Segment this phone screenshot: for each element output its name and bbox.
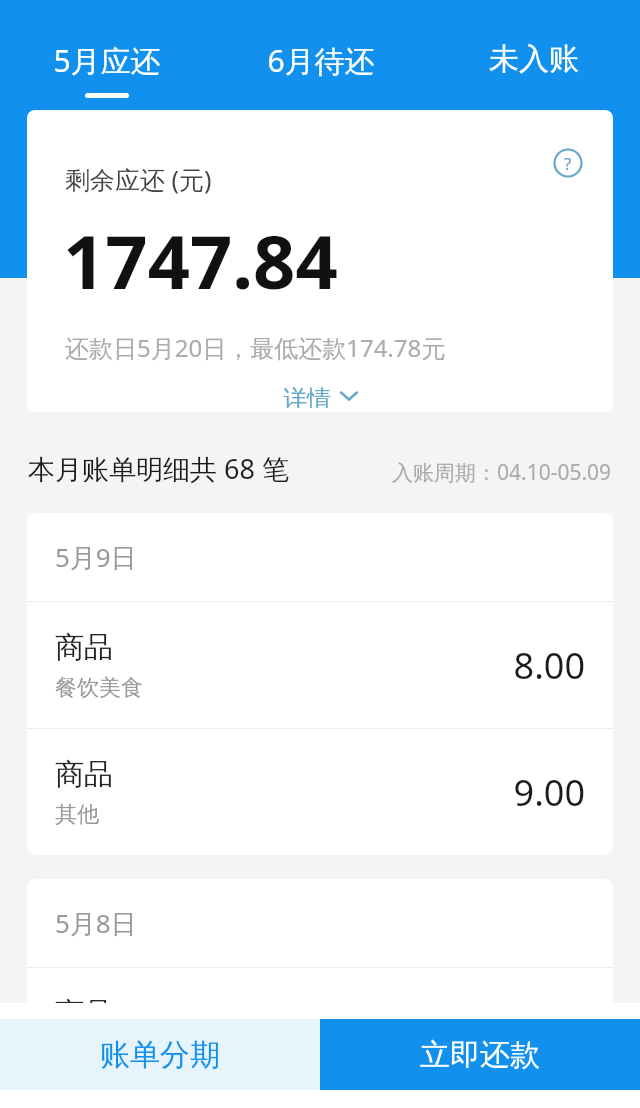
staticText: 剩余应还 (元): [65, 162, 212, 196]
staticText: 餐饮美食: [55, 674, 143, 702]
button[interactable]: 详情: [273, 380, 367, 412]
staticText: 还款日5月20日，最低还款174.78元: [65, 331, 446, 364]
button[interactable]: 商品: [27, 602, 613, 728]
staticText: 12.00: [492, 1007, 585, 1056]
button[interactable]: 6月待还: [214, 0, 427, 110]
button[interactable]: 帮助: [551, 146, 585, 180]
staticText: 其他: [55, 801, 99, 829]
staticText: 5月应还: [53, 40, 161, 81]
button[interactable]: 5月8日: [27, 879, 613, 967]
button[interactable]: 未入账: [427, 0, 640, 110]
staticText: 8.00: [513, 641, 585, 690]
staticText: 本月账单明细共 68 笔: [28, 450, 289, 487]
button[interactable]: 商品: [27, 729, 613, 855]
staticText: 5月8日: [55, 905, 137, 941]
button[interactable]: 商品: [27, 968, 613, 1094]
button[interactable]: 账单分期: [0, 1019, 320, 1090]
staticText: 商品: [55, 756, 113, 793]
staticText: 商品: [55, 629, 113, 666]
button[interactable]: 帮助: [27, 110, 613, 412]
staticText: 9.00: [513, 768, 585, 817]
staticText: 入账周期：04.10-05.09: [392, 458, 612, 487]
staticText: 立即还款: [420, 1036, 540, 1074]
button[interactable]: 5月应还: [0, 0, 214, 110]
staticText: 商品: [55, 995, 113, 1032]
button[interactable]: 5月9日: [27, 513, 613, 601]
staticText: 详情: [283, 384, 331, 408]
staticText: 未入账: [489, 40, 579, 78]
staticText: 1747.84: [63, 210, 338, 311]
button[interactable]: 立即还款: [320, 1019, 640, 1090]
staticText: 5月9日: [55, 539, 137, 575]
staticText: 6月待还: [267, 40, 375, 81]
staticText: ?: [564, 152, 572, 175]
staticText: 账单分期: [100, 1036, 220, 1074]
